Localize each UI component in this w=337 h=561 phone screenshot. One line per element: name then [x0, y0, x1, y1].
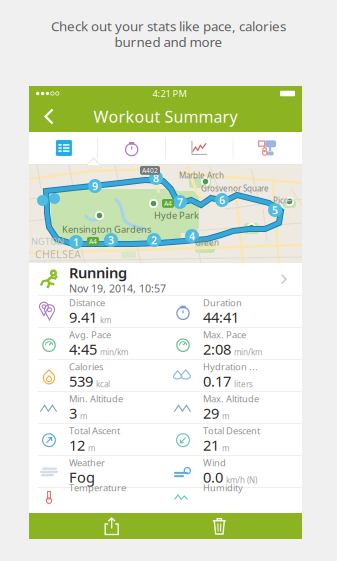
staticText: NGTON: [31, 235, 64, 247]
staticText: Workout Summary: [93, 106, 237, 127]
staticText: 9: [92, 179, 98, 193]
staticText: Wind: [203, 456, 226, 469]
staticText: 7: [177, 195, 183, 209]
staticText: m: [222, 443, 229, 453]
staticText: Total Descent: [203, 424, 260, 437]
staticText: m: [222, 411, 229, 421]
staticText: Weather: [69, 456, 105, 469]
button[interactable]: Gear: [233, 132, 300, 164]
staticText: m: [80, 411, 87, 421]
staticText: Grosvenor Square: [201, 183, 269, 194]
staticText: 3: [108, 233, 114, 247]
staticText: Kensington Gardens: [62, 223, 151, 235]
staticText: Max. Pace: [203, 328, 246, 341]
staticText: 44:41: [203, 307, 239, 327]
button[interactable]: Delete: [194, 513, 244, 539]
staticText: 4:21 PM: [152, 87, 186, 100]
staticText: Hyde Park: [154, 209, 199, 221]
staticText: Humidity: [203, 481, 243, 494]
staticText: 4:45: [69, 339, 97, 359]
staticText: Hydration ...: [203, 360, 258, 373]
button[interactable]: Back: [29, 101, 65, 131]
staticText: Calories: [69, 360, 103, 373]
staticText: Max. Altitude: [203, 392, 259, 405]
staticText: 4: [189, 229, 195, 243]
button[interactable]: Charts: [166, 132, 233, 164]
staticText: Min. Altitude: [69, 392, 123, 405]
staticText: A402: [142, 166, 158, 175]
staticText: liters: [234, 379, 253, 389]
staticText: 2: [151, 233, 157, 247]
button[interactable]: Share: [87, 513, 137, 539]
staticText: 8: [153, 171, 159, 185]
staticText: 3: [69, 403, 77, 423]
staticText: Picca: [273, 195, 292, 206]
staticText: 0.0: [203, 467, 223, 487]
staticText: Distance: [69, 296, 105, 309]
staticText: 2:08: [203, 339, 231, 359]
staticText: Temperature: [69, 481, 126, 494]
staticText: Fog: [69, 467, 95, 487]
staticText: Marble Arch: [179, 170, 224, 181]
staticText: min/km: [100, 347, 128, 357]
staticText: A4: [89, 237, 97, 246]
staticText: 0.17: [203, 371, 231, 391]
staticText: 9.41: [69, 307, 97, 327]
staticText: 1: [73, 235, 79, 249]
staticText: Total Ascent: [69, 424, 120, 437]
staticText: 29: [203, 403, 219, 423]
staticText: Check out your stats like pace, calories: [51, 17, 286, 35]
staticText: km/h (N): [226, 475, 257, 485]
staticText: min/km: [234, 347, 262, 357]
staticText: CHELSEA: [35, 247, 81, 261]
button[interactable]: Running workout details: [29, 263, 302, 295]
staticText: 5: [272, 203, 278, 217]
staticText: 539: [69, 371, 93, 391]
button[interactable]: Laps: [98, 132, 165, 164]
button[interactable]: Summary: [30, 132, 97, 164]
staticText: m: [88, 443, 95, 453]
staticText: km: [100, 315, 111, 325]
staticText: 21: [203, 435, 219, 455]
staticText: kcal: [96, 379, 110, 389]
staticText: Nov 19, 2014, 10:57: [69, 281, 166, 296]
staticText: Avg. Pace: [69, 328, 111, 341]
staticText: Duration: [203, 296, 242, 309]
staticText: A4: [164, 199, 172, 208]
staticText: Running: [69, 263, 127, 282]
staticText: 12: [69, 435, 85, 455]
staticText: burned and more: [114, 33, 222, 51]
staticText: Green: [195, 237, 219, 248]
staticText: 6: [219, 193, 225, 207]
